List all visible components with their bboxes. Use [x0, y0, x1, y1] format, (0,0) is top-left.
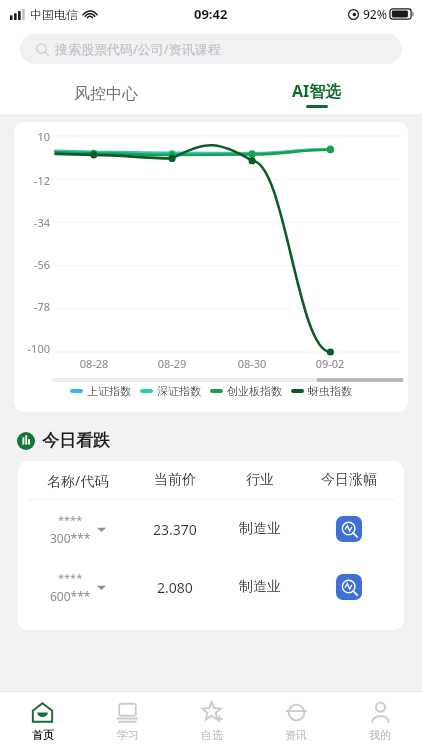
staticText: 10 [16, 129, 50, 144]
staticText: 当前价 [154, 471, 196, 489]
staticText: -78 [16, 299, 50, 314]
button[interactable]: 学习 [85, 692, 170, 750]
staticText: -34 [16, 215, 50, 230]
staticText: 风控中心 [74, 84, 138, 104]
staticText: -12 [16, 173, 50, 188]
staticText: 2.080 [157, 578, 193, 597]
button[interactable]: 资讯 [254, 692, 338, 750]
button[interactable]: AI智选 [211, 76, 422, 112]
button[interactable]: 查看涨幅详情 [336, 574, 362, 600]
staticText: 92% [363, 6, 387, 22]
staticText: 学习 [117, 728, 139, 742]
staticText: 今日看跌 [42, 430, 110, 451]
staticText: 08-30 [232, 356, 272, 371]
staticText: 23.370 [153, 520, 197, 539]
button[interactable]: 自选 [170, 692, 254, 750]
staticText: 上证指数 [87, 384, 131, 398]
staticText: 今日涨幅 [321, 471, 377, 489]
button[interactable]: **** [26, 558, 396, 616]
staticText: -100 [16, 341, 50, 356]
button[interactable]: 首页 [0, 692, 85, 750]
button[interactable]: 搜索股票代码/公司/资讯课程 [20, 34, 402, 64]
staticText: 600*** [50, 588, 91, 604]
staticText: 深证指数 [157, 384, 201, 398]
staticText: 行业 [246, 471, 274, 489]
staticText: 自选 [201, 728, 223, 742]
staticText: 08-29 [152, 356, 192, 371]
staticText: 搜索股票代码/公司/资讯课程 [55, 40, 221, 58]
staticText: 资讯 [285, 728, 307, 742]
staticText: AI智选 [292, 80, 342, 102]
button[interactable]: **** [26, 500, 396, 558]
button[interactable]: 风控中心 [0, 76, 211, 112]
staticText: 创业板指数 [227, 384, 282, 398]
staticText: 09-02 [310, 356, 350, 371]
staticText: 名称/代码 [47, 471, 109, 490]
staticText: 09:42 [194, 5, 228, 23]
staticText: **** [58, 570, 83, 585]
button[interactable]: 我的 [338, 692, 422, 750]
staticText: -56 [16, 257, 50, 272]
button[interactable]: 查看涨幅详情 [336, 516, 362, 542]
staticText: 首页 [32, 728, 54, 742]
staticText: **** [58, 512, 83, 527]
staticText: 我的 [369, 728, 391, 742]
staticText: 中国电信 [30, 7, 78, 22]
staticText: 08-28 [74, 356, 114, 371]
staticText: 制造业 [239, 520, 281, 538]
staticText: 蚜虫指数 [308, 384, 352, 398]
staticText: 300*** [50, 530, 91, 546]
staticText: 制造业 [239, 578, 281, 596]
